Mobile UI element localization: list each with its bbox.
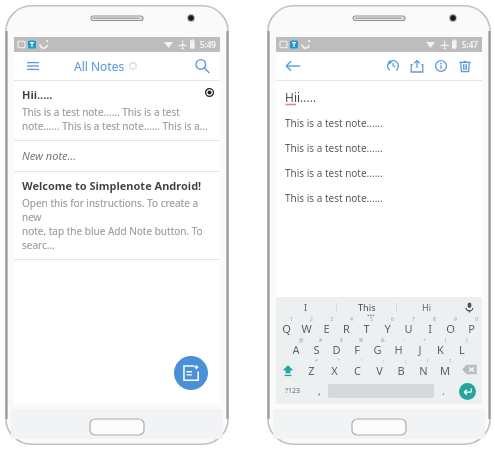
button[interactable]: H <box>388 338 409 359</box>
staticText: F <box>354 342 360 357</box>
staticText: W <box>301 321 312 336</box>
staticText: ; <box>405 358 407 365</box>
staticText: 5:47 <box>462 39 478 50</box>
button[interactable]: Share <box>405 54 429 78</box>
button[interactable]: Voice input <box>456 297 482 317</box>
staticText: Hii..... <box>22 87 53 102</box>
button[interactable]: B <box>390 359 412 380</box>
staticText: U <box>404 321 413 336</box>
staticText: 0 <box>475 316 478 323</box>
staticText: + <box>423 337 426 344</box>
button[interactable]: Open navigation drawer <box>22 55 44 77</box>
button[interactable]: Enter <box>452 380 482 402</box>
staticText: H <box>394 342 403 357</box>
staticText: 2 <box>310 316 313 323</box>
button[interactable]: O <box>440 317 461 338</box>
button[interactable]: D <box>326 338 346 359</box>
button[interactable]: Back <box>283 56 303 76</box>
button[interactable]: . <box>434 380 452 402</box>
button[interactable]: Shift <box>276 359 300 380</box>
staticText: # <box>319 337 323 344</box>
button[interactable]: Z <box>300 359 323 380</box>
staticText: note, tap the blue Add Note button. To s… <box>22 224 212 252</box>
staticText: I <box>304 301 308 313</box>
staticText: ' <box>361 358 363 365</box>
staticText: This is a test note...... <box>285 166 383 180</box>
button[interactable]: V <box>368 359 390 380</box>
button[interactable]: G <box>367 338 388 359</box>
staticText: S <box>313 342 320 357</box>
button[interactable]: Add note <box>174 356 208 390</box>
staticText: 9 <box>454 316 457 323</box>
staticText: M <box>440 363 450 378</box>
staticText: . <box>442 384 445 398</box>
staticText: 4 <box>350 316 353 323</box>
staticText: ? <box>449 358 452 365</box>
button[interactable]: E <box>316 317 336 338</box>
button[interactable]: R <box>336 317 356 338</box>
staticText: Q <box>282 321 291 336</box>
staticText: L <box>459 342 465 357</box>
button[interactable]: Welcome to Simplenote Android! <box>14 172 220 259</box>
staticText: 7 <box>412 316 415 323</box>
staticText: 5:49 <box>200 39 216 50</box>
staticText: $ <box>340 337 343 344</box>
button[interactable]: All Notes <box>74 58 137 74</box>
button[interactable]: S <box>306 338 326 359</box>
staticText: V <box>376 363 383 378</box>
button[interactable]: This <box>337 297 396 317</box>
staticText: " <box>338 358 341 365</box>
button[interactable]: History <box>381 54 405 78</box>
button[interactable]: J <box>409 338 430 359</box>
staticText: Z <box>308 363 315 378</box>
button[interactable]: Backspace <box>456 359 482 380</box>
button[interactable]: T <box>356 317 377 338</box>
button[interactable]: I <box>419 317 440 338</box>
button[interactable]: W <box>296 317 316 338</box>
button[interactable]: New note… <box>14 141 220 171</box>
button[interactable]: N <box>412 359 434 380</box>
button[interactable]: Search <box>192 56 212 76</box>
staticText: D <box>332 342 341 357</box>
button[interactable]: I <box>276 297 336 317</box>
staticText: 6 <box>391 316 394 323</box>
button[interactable]: Hi <box>397 297 456 317</box>
staticText: G <box>373 342 382 357</box>
staticText: New note… <box>22 148 77 163</box>
staticText: ) <box>466 337 468 344</box>
staticText: ?123 <box>285 386 301 396</box>
staticText: All Notes <box>74 58 125 74</box>
button[interactable]: , <box>310 380 328 402</box>
button[interactable]: Hii..... <box>14 81 220 140</box>
button[interactable]: Delete <box>453 54 477 78</box>
staticText: Y <box>384 321 391 336</box>
button[interactable]: F <box>346 338 367 359</box>
staticText: % <box>359 337 364 344</box>
staticText: This <box>358 301 376 313</box>
button[interactable]: M <box>434 359 456 380</box>
staticText: X <box>331 363 338 378</box>
staticText: 1 <box>290 316 293 323</box>
staticText: K <box>437 342 444 357</box>
button[interactable]: P <box>461 317 482 338</box>
button[interactable]: Q <box>276 317 296 338</box>
staticText: This is a test note...... <box>285 191 383 205</box>
button[interactable]: Info <box>429 54 453 78</box>
staticText: E <box>323 321 330 336</box>
staticText: This is a test note...... <box>285 116 383 130</box>
button[interactable]: L <box>451 338 472 359</box>
staticText: N <box>419 363 428 378</box>
staticText: T <box>363 321 370 336</box>
button[interactable]: U <box>398 317 419 338</box>
staticText: 5 <box>370 316 373 323</box>
button[interactable]: C <box>346 359 368 380</box>
staticText: O <box>446 321 455 336</box>
button[interactable]: Y <box>377 317 398 338</box>
staticText: ! <box>427 358 429 365</box>
button[interactable]: X <box>323 359 346 380</box>
staticText: P <box>468 321 475 336</box>
button[interactable]: K <box>430 338 451 359</box>
button[interactable]: A <box>286 338 306 359</box>
button[interactable]: ?123 <box>276 380 310 402</box>
